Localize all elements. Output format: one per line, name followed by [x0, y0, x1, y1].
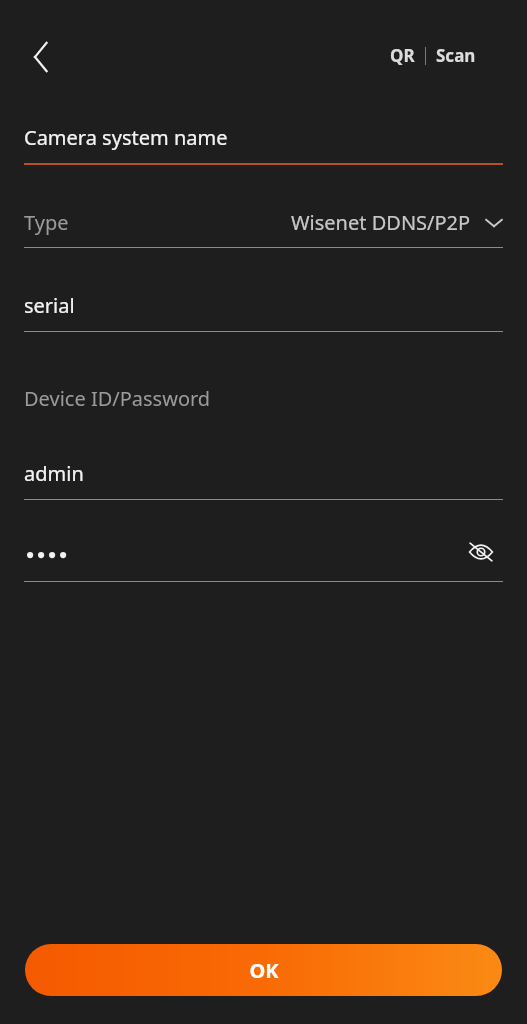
button[interactable]: QR [380, 34, 425, 77]
button[interactable]: Camera system name [0, 104, 527, 165]
staticText: Wisenet DDNS/P2P [291, 209, 471, 236]
button[interactable]: Scan [426, 34, 486, 77]
staticText: Camera system name [24, 124, 228, 151]
staticText: OK [249, 957, 279, 984]
staticText: admin [24, 460, 84, 487]
button[interactable]: OK [25, 944, 502, 996]
button[interactable]: serial [0, 292, 527, 332]
staticText: QR [390, 44, 415, 67]
button[interactable]: admin [0, 460, 527, 500]
staticText: serial [24, 292, 75, 319]
staticText: Type [24, 209, 69, 236]
staticText: Scan [436, 44, 476, 67]
button[interactable]: Back [18, 34, 64, 80]
button[interactable]: Type [0, 209, 527, 248]
staticText: Device ID/Password [24, 385, 211, 412]
button[interactable]: Show password [459, 530, 503, 574]
